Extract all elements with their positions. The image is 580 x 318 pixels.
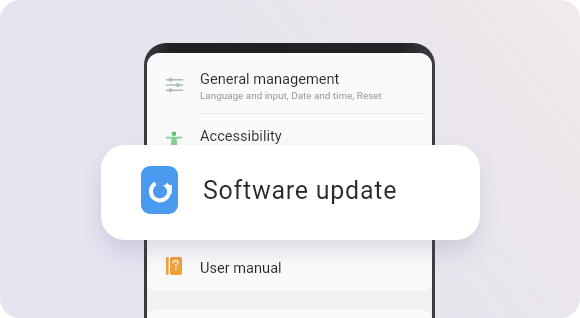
other: Software update	[141, 166, 178, 214]
button[interactable]: Software update	[101, 145, 480, 240]
button[interactable]: Accessibility	[147, 114, 432, 160]
staticText: User manual	[200, 259, 282, 276]
button[interactable]: Battery and device care	[147, 208, 432, 254]
staticText: Software update	[203, 176, 398, 205]
button[interactable]: User manual	[147, 255, 432, 291]
staticText: Digital wellbeing	[200, 174, 307, 191]
staticText: Language and input, Date and time, Reset	[200, 90, 382, 102]
button[interactable]: General management	[147, 53, 432, 113]
staticText: General management	[200, 70, 340, 87]
button[interactable]: Digital wellbeing	[147, 161, 432, 207]
staticText: Accessibility	[200, 127, 282, 144]
